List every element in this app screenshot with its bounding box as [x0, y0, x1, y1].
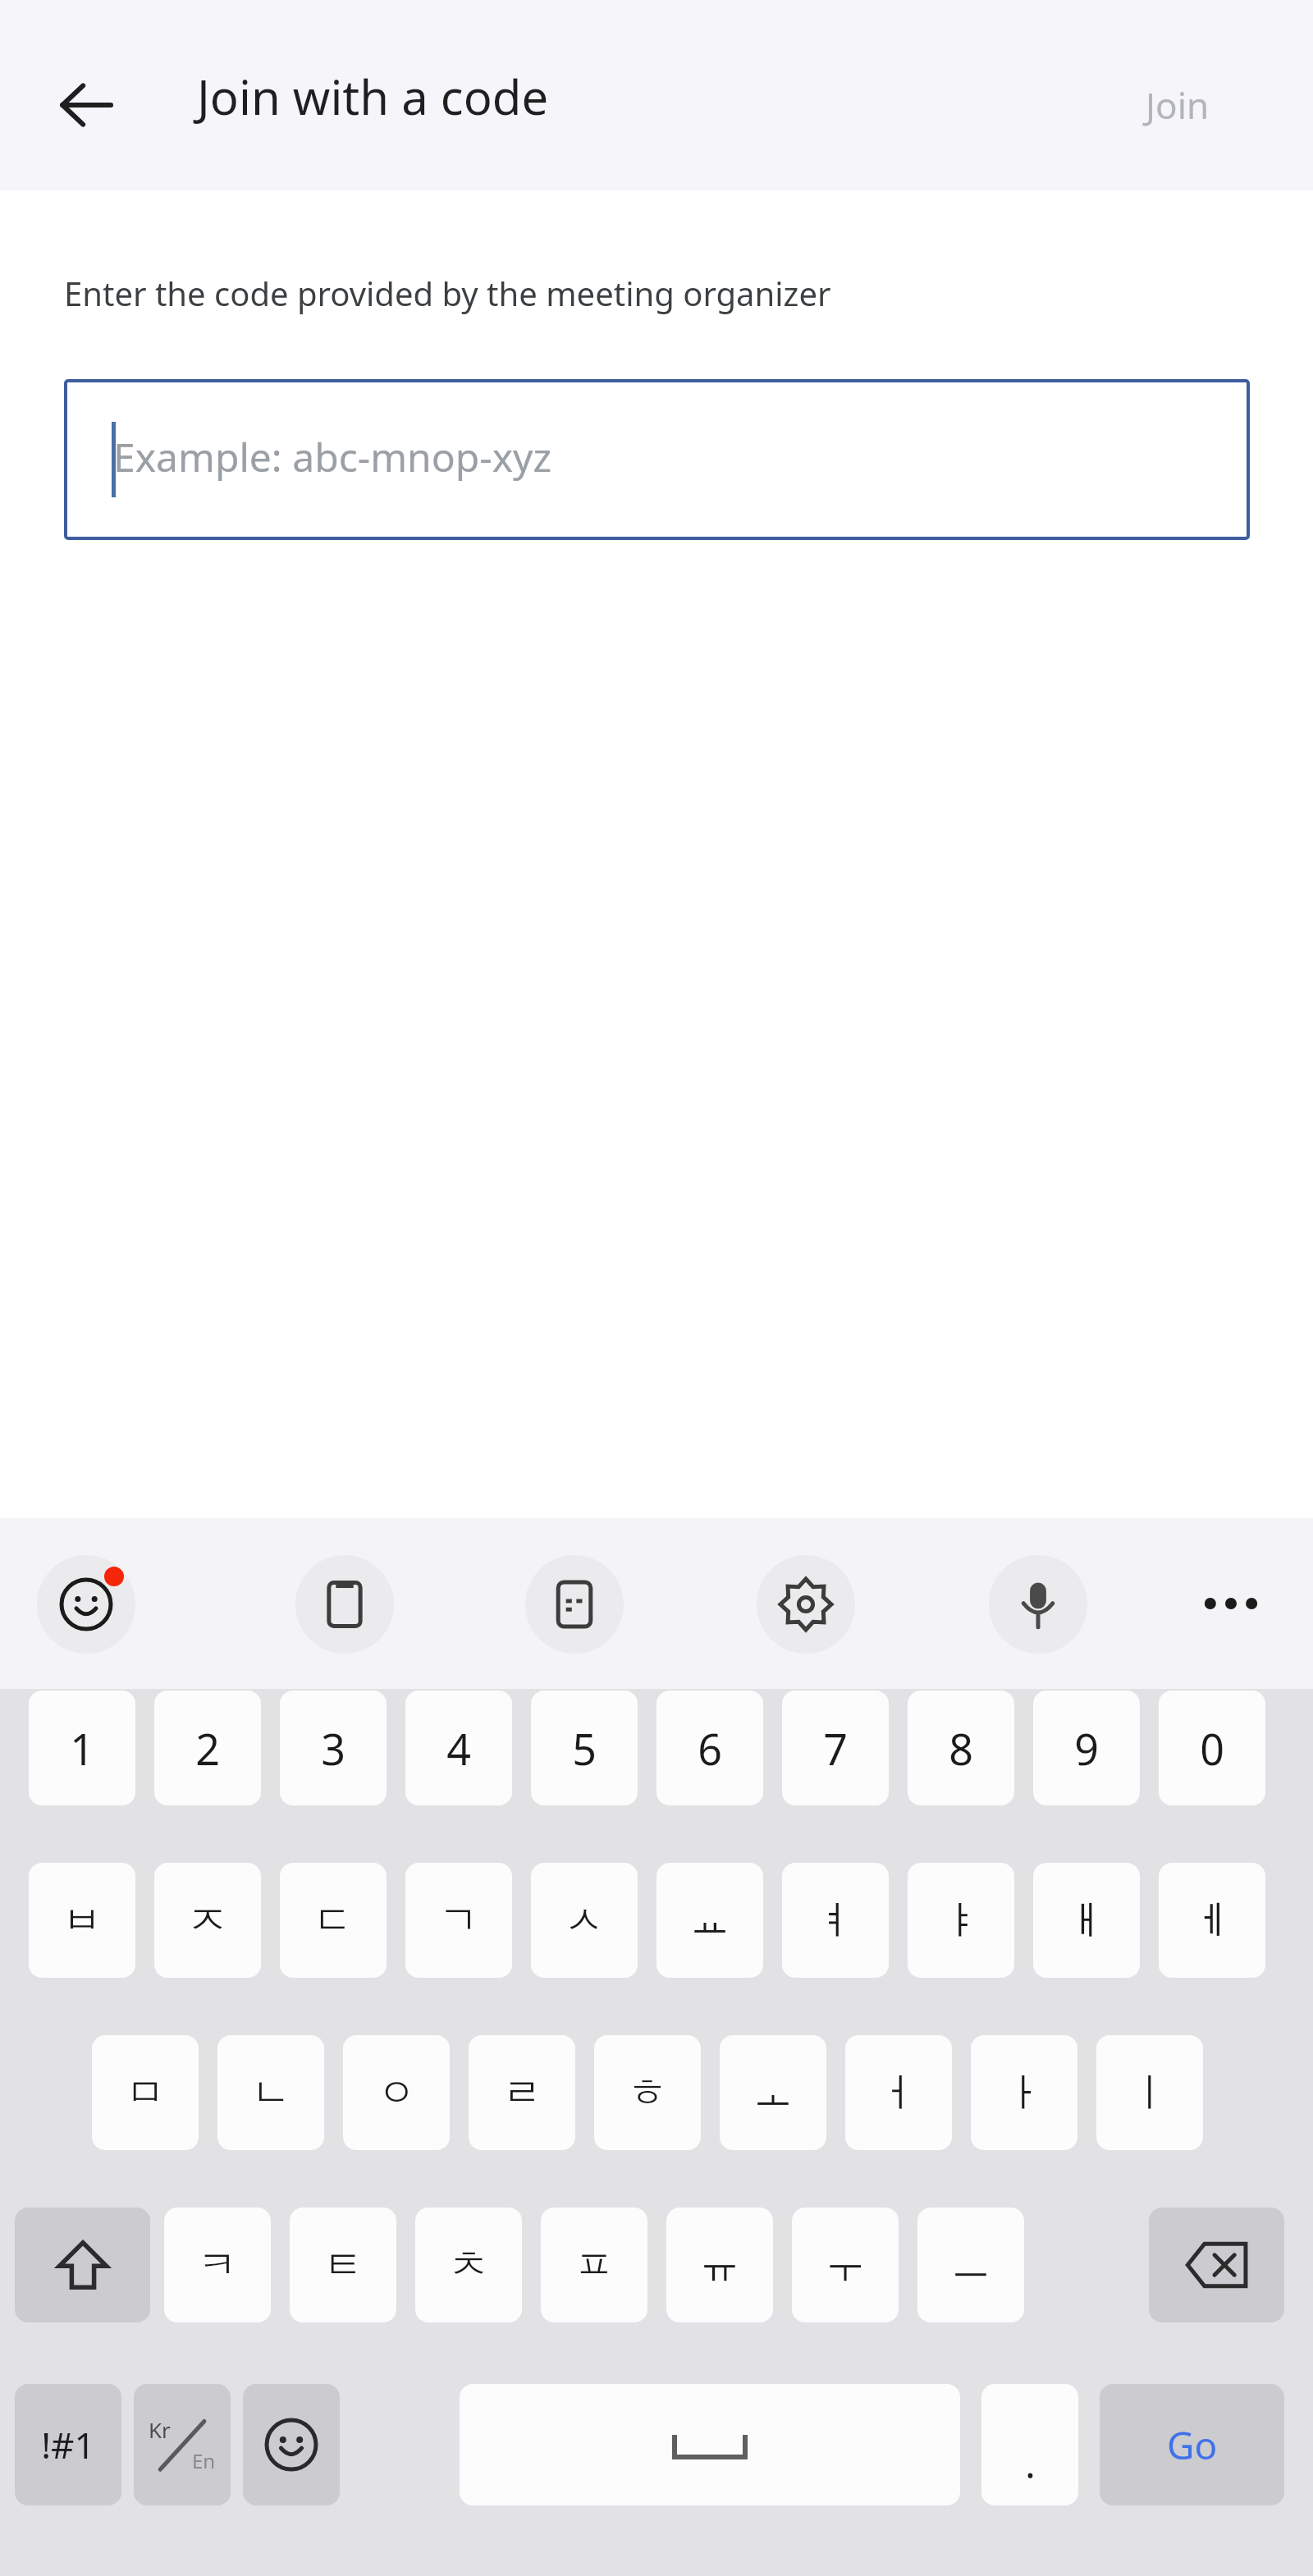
button[interactable]: 4 — [405, 1691, 512, 1805]
button[interactable]: ㅇ — [343, 2035, 450, 2150]
staticText: ㄱ — [439, 1896, 478, 1945]
button[interactable]: ㅅ — [531, 1863, 638, 1978]
staticText: 9 — [1074, 1719, 1099, 1778]
staticText: ㅁ — [126, 2068, 165, 2117]
staticText: . — [1025, 2436, 1036, 2490]
button[interactable]: ㅐ — [1033, 1863, 1140, 1978]
button[interactable]: 6 — [656, 1691, 763, 1805]
button[interactable]: Voice input — [989, 1555, 1087, 1654]
button[interactable]: 7 — [782, 1691, 889, 1805]
staticText: ㅂ — [62, 1896, 102, 1945]
button[interactable]: ㄷ — [280, 1863, 387, 1978]
button[interactable]: ㅌ — [290, 2208, 396, 2322]
staticText: 6 — [698, 1719, 722, 1778]
button[interactable]: ㅗ — [720, 2035, 826, 2150]
staticText: 8 — [949, 1719, 973, 1778]
button[interactable]: !#1 — [15, 2384, 121, 2505]
button[interactable]: Switch language — [134, 2384, 231, 2505]
button[interactable]: ㅕ — [782, 1863, 889, 1978]
staticText: 0 — [1200, 1719, 1224, 1778]
button[interactable]: ㅛ — [656, 1863, 763, 1978]
button[interactable]: ㅂ — [29, 1863, 135, 1978]
button[interactable]: ㄱ — [405, 1863, 512, 1978]
button[interactable]: Example: abc-mnop-xyz — [64, 379, 1250, 540]
staticText: Go — [1167, 2419, 1218, 2471]
button[interactable]: ㅏ — [971, 2035, 1077, 2150]
button[interactable]: ㅍ — [541, 2208, 647, 2322]
staticText: ㄴ — [251, 2068, 291, 2117]
button[interactable]: Shift — [15, 2208, 150, 2322]
staticText: ㅈ — [188, 1896, 227, 1945]
staticText: 1 — [70, 1719, 94, 1778]
staticText: ㅕ — [816, 1896, 855, 1945]
staticText: ㅌ — [323, 2240, 363, 2290]
staticText: ㅑ — [941, 1896, 981, 1945]
staticText: 4 — [446, 1719, 471, 1778]
button[interactable]: ㅓ — [845, 2035, 952, 2150]
staticText: ㅇ — [377, 2068, 416, 2117]
button[interactable]: Keyboard settings — [757, 1555, 855, 1654]
button[interactable]: ㅎ — [594, 2035, 701, 2150]
button[interactable]: Clipboard — [295, 1555, 394, 1654]
staticText: ㅜ — [826, 2240, 865, 2290]
staticText: !#1 — [41, 2420, 95, 2469]
button[interactable]: Join — [1091, 54, 1264, 156]
staticText: ㅡ — [951, 2240, 990, 2290]
staticText: 5 — [572, 1719, 597, 1778]
button[interactable]: ㅑ — [908, 1863, 1014, 1978]
button[interactable]: ㅣ — [1096, 2035, 1203, 2150]
button[interactable]: Emoji — [243, 2384, 340, 2505]
button[interactable]: . — [981, 2384, 1078, 2505]
button[interactable]: 3 — [280, 1691, 387, 1805]
button[interactable]: 8 — [908, 1691, 1014, 1805]
staticText: ㅐ — [1067, 1896, 1106, 1945]
button[interactable]: ㄴ — [217, 2035, 324, 2150]
button[interactable]: ㅡ — [917, 2208, 1024, 2322]
button[interactable]: ㅈ — [154, 1863, 261, 1978]
button[interactable]: Emoji — [37, 1555, 135, 1654]
staticText: ㄹ — [502, 2068, 542, 2117]
staticText: Example: abc-mnop-xyz — [113, 430, 552, 483]
button[interactable]: ㅔ — [1159, 1863, 1265, 1978]
button[interactable]: ㄹ — [469, 2035, 575, 2150]
staticText: 7 — [823, 1719, 848, 1778]
staticText: ㅗ — [753, 2068, 793, 2117]
staticText: Kr — [149, 2415, 171, 2444]
button[interactable]: 1 — [29, 1691, 135, 1805]
button[interactable]: More options — [1186, 1558, 1276, 1649]
button[interactable]: ㅜ — [792, 2208, 899, 2322]
button[interactable]: ㅁ — [92, 2035, 199, 2150]
staticText: Join with a code — [197, 64, 549, 129]
button[interactable]: 2 — [154, 1691, 261, 1805]
button[interactable]: 9 — [1033, 1691, 1140, 1805]
staticText: ㅛ — [690, 1896, 730, 1945]
button[interactable]: Backspace — [1149, 2208, 1284, 2322]
staticText: ㅔ — [1192, 1896, 1232, 1945]
staticText: ㅊ — [449, 2240, 488, 2290]
button[interactable]: ㅠ — [666, 2208, 773, 2322]
button[interactable]: ㅊ — [415, 2208, 522, 2322]
staticText: En — [192, 2447, 216, 2474]
button[interactable]: ㅋ — [164, 2208, 271, 2322]
staticText: ㅏ — [1004, 2068, 1044, 2117]
staticText: 2 — [195, 1719, 220, 1778]
staticText: ㄷ — [313, 1896, 353, 1945]
staticText: ㅍ — [574, 2240, 614, 2290]
staticText: ㅓ — [879, 2068, 918, 2117]
staticText: 3 — [321, 1719, 345, 1778]
staticText: ㅋ — [198, 2240, 237, 2290]
button[interactable]: 0 — [1159, 1691, 1265, 1805]
button[interactable]: Space — [460, 2384, 960, 2505]
staticText: ㅅ — [565, 1896, 604, 1945]
button[interactable]: Back — [41, 60, 131, 150]
button[interactable]: 5 — [531, 1691, 638, 1805]
button[interactable]: Go — [1100, 2384, 1284, 2505]
staticText: ㅣ — [1130, 2068, 1169, 2117]
staticText: Join — [1146, 80, 1210, 130]
staticText: ㅎ — [628, 2068, 667, 2117]
button[interactable]: Stickers — [525, 1555, 624, 1654]
staticText: Enter the code provided by the meeting o… — [64, 271, 831, 315]
staticText: ㅠ — [700, 2240, 739, 2290]
